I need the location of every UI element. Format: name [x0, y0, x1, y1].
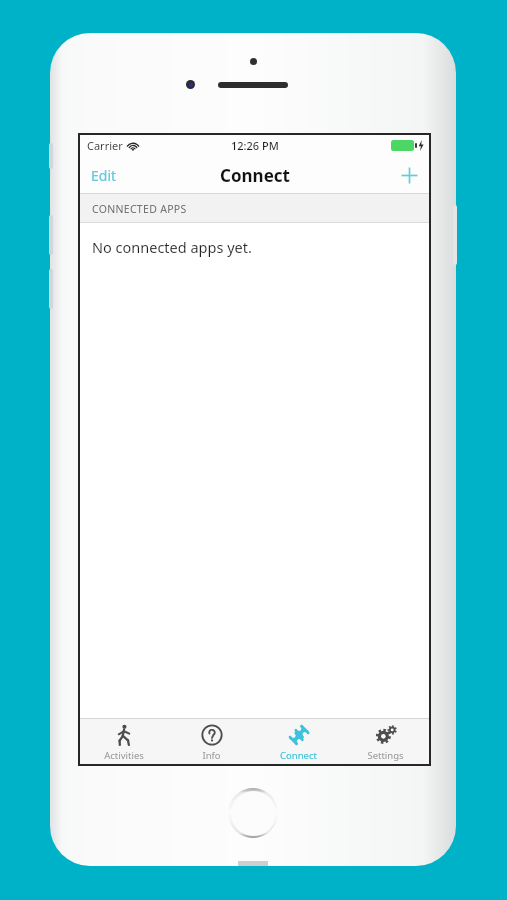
button[interactable]: Connect — [255, 719, 342, 764]
button[interactable]: Info — [168, 719, 255, 764]
staticText: No connected apps yet. — [92, 237, 252, 257]
button[interactable]: Settings — [342, 719, 429, 764]
staticText: Carrier — [87, 138, 123, 153]
staticText: Connect — [280, 749, 317, 762]
staticText: Activities — [104, 749, 144, 762]
staticText: Edit — [91, 166, 117, 185]
staticText: CONNECTED APPS — [92, 202, 187, 216]
button[interactable]: Add connected app — [390, 160, 429, 191]
staticText: Connect — [220, 164, 290, 187]
staticText: Info — [202, 749, 221, 762]
button[interactable]: Home — [228, 788, 278, 838]
staticText: Settings — [367, 749, 404, 762]
staticText: 12:26 PM — [231, 138, 279, 153]
button[interactable]: Activities — [80, 719, 168, 764]
button[interactable]: Edit — [80, 158, 128, 193]
